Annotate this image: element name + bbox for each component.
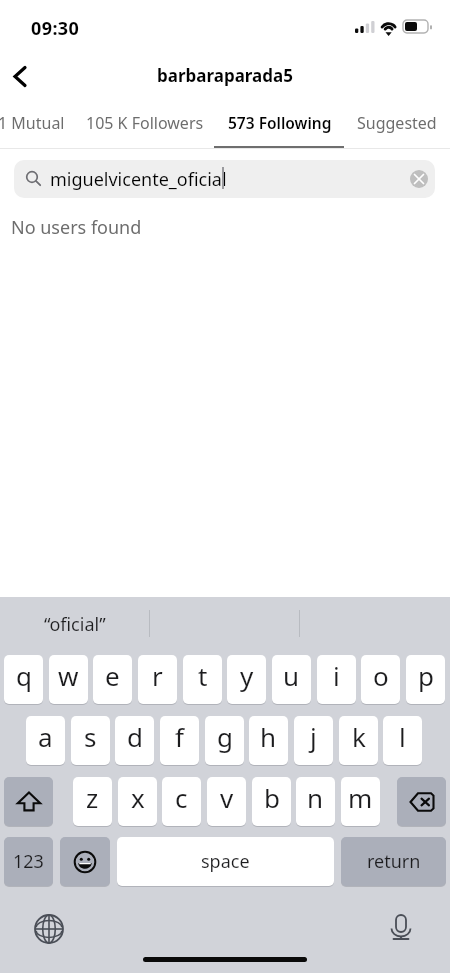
staticText: o <box>373 658 389 693</box>
staticText: w <box>58 658 79 693</box>
staticText: 573 Following <box>228 112 332 133</box>
staticText: v <box>220 780 234 815</box>
staticText: u <box>283 658 300 693</box>
staticText: r <box>152 658 163 693</box>
staticText: “oficial” <box>44 612 106 637</box>
button[interactable]: v <box>207 777 246 826</box>
staticText: n <box>307 780 324 815</box>
staticText: Suggested <box>357 112 437 134</box>
staticText: h <box>260 719 277 754</box>
button[interactable]: a <box>26 716 65 765</box>
button[interactable]: Clear text <box>410 170 428 188</box>
staticText: z <box>86 780 99 815</box>
staticText: c <box>175 780 188 815</box>
staticText: e <box>105 658 120 693</box>
button[interactable]: miguelvicente_oficial <box>14 160 435 198</box>
button[interactable]: b <box>252 777 291 826</box>
staticText: 105 K Followers <box>86 112 204 134</box>
button[interactable]: d <box>115 716 154 765</box>
button[interactable]: r <box>138 655 177 704</box>
staticText: m <box>348 780 373 815</box>
button[interactable]: i <box>317 655 356 704</box>
button[interactable]: Shift <box>4 777 53 826</box>
button[interactable]: n <box>296 777 335 826</box>
staticText: barbaraparada5 <box>0 64 450 87</box>
button[interactable]: w <box>49 655 88 704</box>
staticText: s <box>84 719 97 754</box>
button[interactable]: c <box>162 777 201 826</box>
staticText: b <box>264 780 280 815</box>
staticText: d <box>127 719 143 754</box>
staticText: y <box>240 658 254 693</box>
button[interactable]: Emoji <box>60 837 110 886</box>
button[interactable]: s <box>71 716 110 765</box>
button[interactable]: g <box>205 716 244 765</box>
button[interactable]: return <box>341 837 446 886</box>
button[interactable]: p <box>406 655 445 704</box>
staticText: p <box>418 658 434 693</box>
staticText: No users found <box>11 215 142 240</box>
staticText: x <box>131 780 145 815</box>
button[interactable]: z <box>73 777 112 826</box>
button[interactable]: j <box>294 716 333 765</box>
staticText: l <box>399 719 406 754</box>
button[interactable]: y <box>227 655 266 704</box>
button[interactable]: x <box>118 777 157 826</box>
button[interactable]: f <box>160 716 199 765</box>
staticText: space <box>201 849 250 874</box>
button[interactable]: h <box>249 716 288 765</box>
button[interactable]: Back <box>0 54 44 96</box>
staticText: i <box>333 658 340 693</box>
button[interactable]: Voice input <box>382 908 420 946</box>
staticText: 1 Mutual <box>0 112 65 134</box>
button[interactable]: k <box>339 716 378 765</box>
button[interactable]: e <box>93 655 132 704</box>
staticText: t <box>198 658 208 693</box>
staticText: 09:30 <box>31 16 80 41</box>
button[interactable]: m <box>341 777 380 826</box>
staticText: a <box>38 719 53 754</box>
staticText: f <box>175 719 184 754</box>
button[interactable]: q <box>4 655 43 704</box>
button[interactable]: Change keyboard <box>30 910 68 948</box>
button[interactable]: u <box>272 655 311 704</box>
staticText: k <box>352 719 366 754</box>
button[interactable]: o <box>361 655 400 704</box>
staticText: miguelvicente_oficial <box>50 167 227 192</box>
button[interactable]: 123 <box>4 837 53 886</box>
staticText: q <box>16 658 32 693</box>
button[interactable]: Backspace <box>397 777 446 826</box>
staticText: return <box>367 849 421 874</box>
staticText: j <box>310 719 317 754</box>
staticText: g <box>217 719 233 754</box>
button[interactable]: space <box>117 837 334 886</box>
staticText: 123 <box>13 849 44 874</box>
button[interactable]: t <box>183 655 222 704</box>
button[interactable]: l <box>383 716 422 765</box>
